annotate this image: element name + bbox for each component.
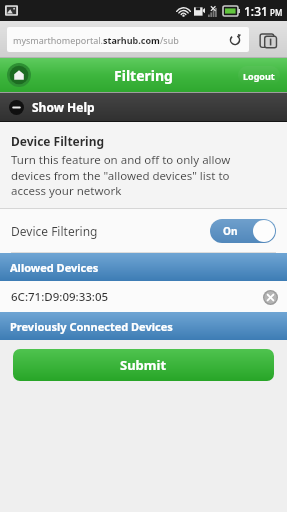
staticText: mysmarthomeportal.	[13, 34, 103, 46]
staticText: Logout	[243, 70, 275, 82]
staticText: Filtering	[114, 66, 173, 85]
staticText: /sub	[160, 34, 179, 46]
button[interactable]: Home	[7, 63, 31, 87]
staticText: Device Filtering	[11, 133, 105, 149]
staticText: 1:31	[244, 3, 268, 19]
staticText: Previously Connected Devices	[10, 319, 173, 334]
button[interactable]: Device Filtering toggle, On	[210, 219, 276, 243]
staticText: On	[223, 224, 238, 238]
staticText: PM	[270, 7, 283, 18]
button[interactable]: Allowed Devices	[0, 253, 287, 281]
button[interactable]: Previously Connected Devices	[0, 312, 287, 340]
staticText: 6C:71:D9:09:33:05	[11, 289, 261, 305]
button[interactable]: Submit	[13, 349, 274, 381]
staticText: Submit	[120, 356, 167, 374]
button[interactable]: Reload	[227, 32, 243, 48]
button[interactable]: Logout	[238, 66, 280, 85]
button[interactable]: Show Help	[0, 93, 287, 121]
staticText: Turn this feature on and off to only all…	[11, 152, 231, 198]
staticText: Show Help	[32, 99, 95, 115]
staticText: Allowed Devices	[10, 260, 99, 275]
button[interactable]: Tabs	[256, 28, 280, 52]
staticText: Device Filtering	[11, 223, 210, 239]
button[interactable]: Remove device	[261, 288, 279, 306]
staticText: starhub.com	[103, 34, 160, 46]
button[interactable]: mysmarthomeportal.	[7, 27, 249, 52]
